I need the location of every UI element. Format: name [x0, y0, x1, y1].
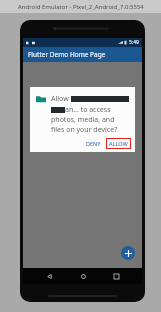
staticText: Flutter Demo Home Page [28, 50, 106, 59]
staticText: Allow [51, 94, 69, 104]
staticText: DENY [86, 140, 101, 147]
button[interactable]: DENY [83, 138, 104, 149]
staticText: an… to access [65, 105, 111, 115]
staticText: ALLOW [109, 140, 128, 147]
staticText: 5:49 [129, 39, 139, 46]
button[interactable]: Home [76, 269, 90, 283]
button[interactable]: Back [42, 269, 56, 283]
staticText: Android Emulator - Pixel_2_Android_7.0:5… [18, 3, 144, 11]
button[interactable]: ALLOW [106, 138, 131, 149]
staticText: files on your device? [51, 125, 118, 135]
button[interactable]: Add [121, 246, 135, 260]
button[interactable]: Recent apps [109, 269, 123, 283]
staticText: photos, media, and [51, 115, 115, 125]
